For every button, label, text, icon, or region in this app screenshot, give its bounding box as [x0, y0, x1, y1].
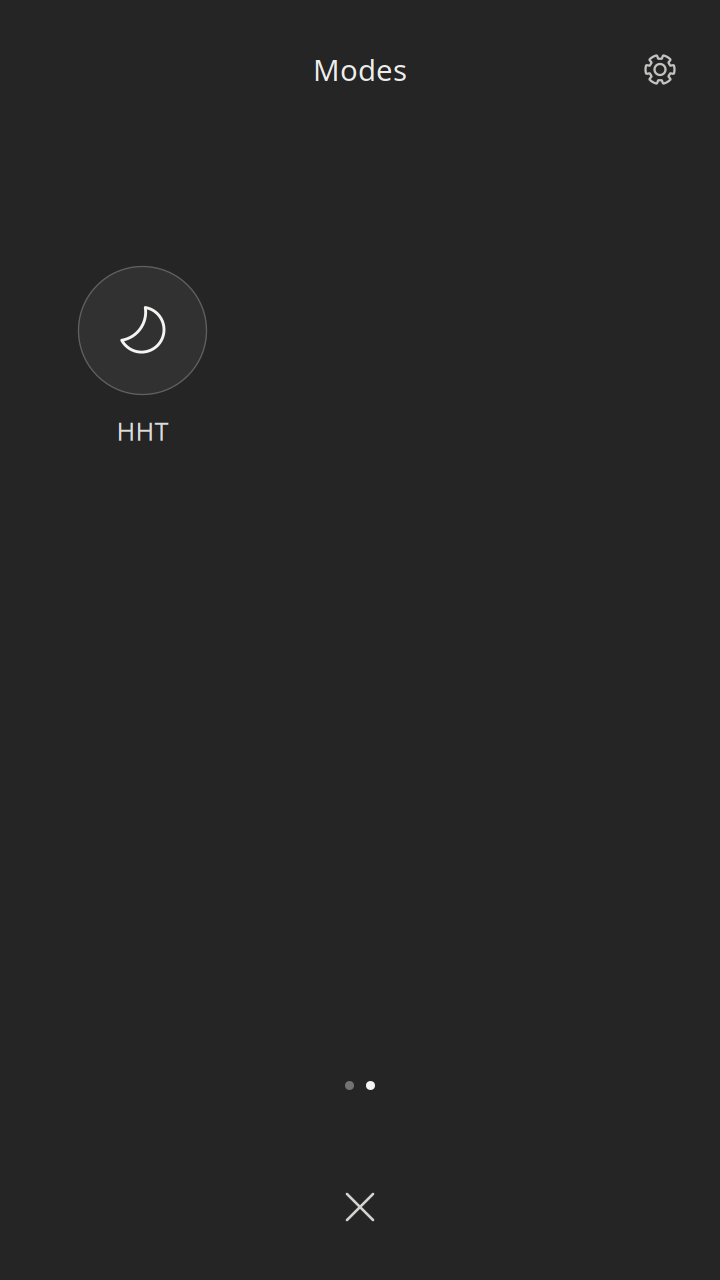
button[interactable]: HHT — [78, 266, 207, 448]
button[interactable]: Settings — [632, 41, 688, 97]
staticText: HHT — [116, 414, 168, 448]
button[interactable]: Close — [327, 1174, 393, 1240]
staticText: Modes — [313, 50, 407, 89]
